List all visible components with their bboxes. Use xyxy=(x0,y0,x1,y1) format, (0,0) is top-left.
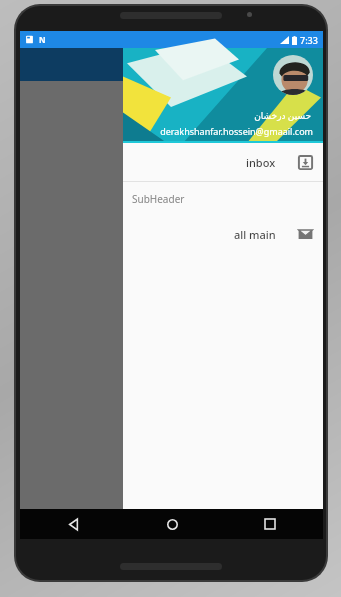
button[interactable]: Home xyxy=(159,511,185,537)
staticText: SubHeader xyxy=(132,192,185,206)
button[interactable]: Back xyxy=(60,511,86,537)
button[interactable]: Profile photo xyxy=(273,55,313,95)
staticText: all main xyxy=(234,227,276,242)
staticText: N xyxy=(39,34,46,45)
button[interactable]: inbox xyxy=(123,143,323,181)
staticText: حسین درخشان xyxy=(254,109,311,121)
staticText: derakhshanfar.hossein@gmaail.com xyxy=(160,125,313,137)
button[interactable]: Recent apps xyxy=(257,511,283,537)
button[interactable]: all main xyxy=(123,215,323,253)
staticText: 7:33 xyxy=(300,34,318,46)
button[interactable]: Profile photo xyxy=(123,48,323,143)
staticText: inbox xyxy=(246,155,276,170)
